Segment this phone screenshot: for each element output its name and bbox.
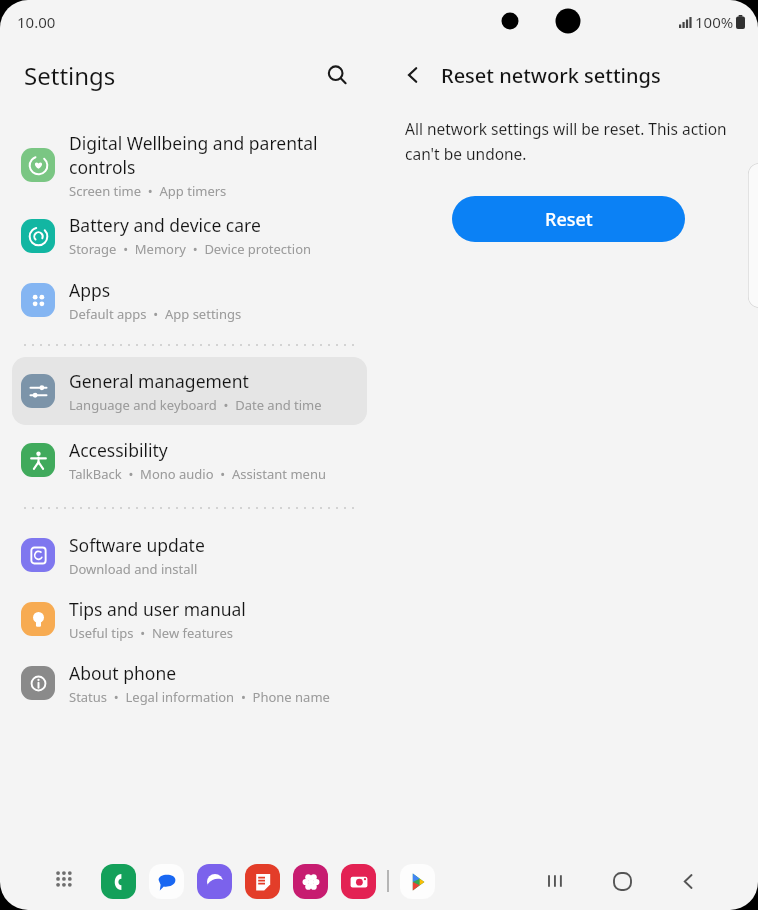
staticText: 100% bbox=[695, 12, 734, 32]
staticText: Digital Wellbeing and parental bbox=[69, 131, 318, 155]
staticText: General management bbox=[69, 369, 249, 393]
button[interactable]: play bbox=[400, 864, 435, 899]
button[interactable]: Back bbox=[666, 859, 710, 903]
staticText: 10.00 bbox=[17, 12, 56, 32]
button[interactable]: cam bbox=[341, 864, 376, 899]
button[interactable]: gal bbox=[293, 864, 328, 899]
button[interactable]: Edge panel bbox=[748, 163, 758, 308]
button[interactable]: Search bbox=[316, 54, 358, 96]
button[interactable]: inet bbox=[197, 864, 232, 899]
staticText: Settings bbox=[24, 59, 116, 92]
staticText: Storage • Memory • Device protection bbox=[69, 240, 312, 258]
button[interactable]: phone bbox=[101, 864, 136, 899]
staticText: Useful tips • New features bbox=[69, 624, 234, 642]
staticText: Reset network settings bbox=[441, 62, 661, 89]
staticText: Software update bbox=[69, 533, 205, 557]
staticText: controls bbox=[69, 155, 136, 179]
staticText: All network settings will be reset. This… bbox=[405, 118, 727, 139]
button[interactable]: msg bbox=[149, 864, 184, 899]
staticText: Battery and device care bbox=[69, 213, 261, 237]
staticText: About phone bbox=[69, 661, 177, 685]
button[interactable]: Digital Wellbeing and parental bbox=[12, 127, 367, 203]
staticText: Default apps • App settings bbox=[69, 305, 242, 323]
button[interactable]: notes bbox=[245, 864, 280, 899]
button[interactable]: Back bbox=[395, 57, 431, 93]
button[interactable]: Recents bbox=[534, 859, 578, 903]
staticText: Tips and user manual bbox=[69, 597, 246, 621]
button[interactable]: Tips and user manual bbox=[12, 587, 367, 651]
button[interactable]: General management bbox=[12, 357, 367, 425]
button[interactable]: All apps bbox=[46, 861, 86, 901]
staticText: Reset bbox=[545, 207, 593, 232]
staticText: Accessibility bbox=[69, 438, 168, 462]
button[interactable]: Accessibility bbox=[12, 429, 367, 491]
button[interactable]: Battery and device care bbox=[12, 203, 367, 268]
button[interactable]: Reset bbox=[452, 196, 685, 242]
button[interactable]: Apps bbox=[12, 268, 367, 332]
staticText: Apps bbox=[69, 278, 111, 302]
staticText: Download and install bbox=[69, 560, 198, 578]
button[interactable]: Software update bbox=[12, 523, 367, 587]
staticText: Status • Legal information • Phone name bbox=[69, 688, 330, 706]
staticText: Language and keyboard • Date and time bbox=[69, 396, 322, 414]
staticText: can't be undone. bbox=[405, 143, 527, 164]
button[interactable]: About phone bbox=[12, 651, 367, 715]
button[interactable]: Home bbox=[600, 859, 644, 903]
staticText: Screen time • App timers bbox=[69, 182, 227, 200]
staticText: TalkBack • Mono audio • Assistant menu bbox=[69, 465, 326, 483]
